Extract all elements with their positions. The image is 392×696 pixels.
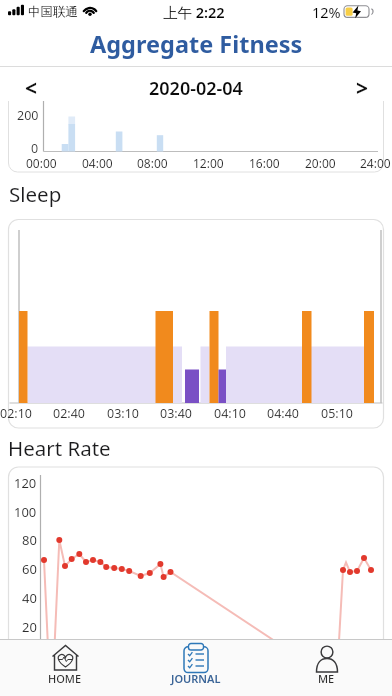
staticText: 00:00 [26, 155, 57, 171]
staticText: 03:40 [160, 405, 192, 422]
staticText: 02:10 [0, 405, 32, 422]
staticText: 08:00 [137, 155, 168, 171]
staticText: 2020-02-04 [149, 76, 243, 101]
staticText: 60 [22, 560, 37, 578]
staticText: 100 [14, 503, 37, 521]
staticText: Aggregate Fitness [90, 28, 303, 60]
staticText: 200 [17, 107, 39, 124]
button[interactable]: 2020-02-04 [126, 70, 266, 106]
staticText: 12:00 [193, 155, 224, 171]
staticText: > [356, 74, 369, 103]
button[interactable]: JOURNAL [130, 639, 261, 696]
staticText: 04:40 [267, 405, 299, 422]
staticText: 20:00 [305, 155, 336, 171]
staticText: 04:10 [214, 405, 246, 422]
staticText: < [25, 74, 38, 103]
staticText: Sleep [9, 180, 62, 208]
button[interactable]: ME [261, 639, 392, 696]
button[interactable]: > [343, 70, 381, 106]
button[interactable]: < [12, 70, 50, 106]
staticText: 上午 2:22 [163, 2, 225, 22]
staticText: ME [318, 671, 335, 686]
staticText: 04:00 [82, 155, 113, 171]
staticText: 16:00 [249, 155, 280, 171]
staticText: 24:00 [360, 155, 391, 171]
staticText: HOME [48, 671, 82, 686]
staticText: 0 [31, 140, 39, 157]
staticText: Heart Rate [8, 434, 111, 462]
staticText: 12% [312, 2, 341, 22]
staticText: 20 [22, 618, 37, 636]
staticText: 02:40 [53, 405, 85, 422]
staticText: JOURNAL [171, 671, 221, 686]
button[interactable]: HOME [0, 639, 130, 696]
staticText: 05:10 [321, 405, 353, 422]
staticText: 中国联通 [28, 4, 78, 20]
staticText: 03:10 [107, 405, 139, 422]
staticText: 40 [22, 589, 37, 607]
staticText: 120 [14, 474, 37, 492]
staticText: 80 [22, 531, 37, 549]
